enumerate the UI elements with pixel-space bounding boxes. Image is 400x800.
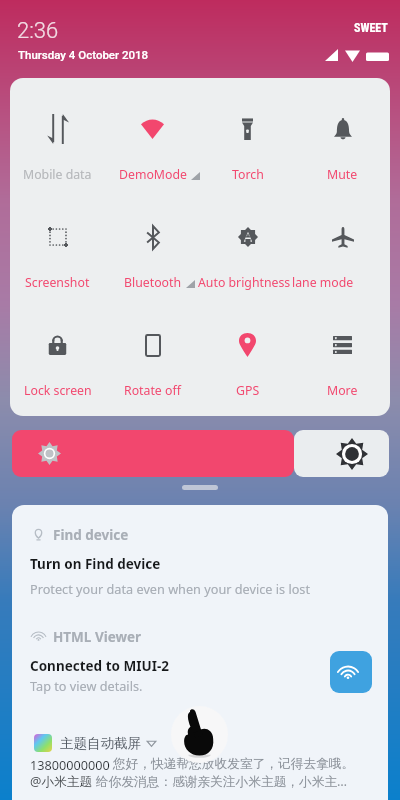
button[interactable]: Wi-Fi (330, 651, 372, 693)
staticText: More (327, 382, 358, 399)
button[interactable]: Mute (295, 78, 390, 186)
staticText: Protect your data even when your device … (30, 580, 310, 597)
button[interactable]: GPS (200, 294, 295, 402)
staticText: Thursday 4 October 2018 (18, 48, 149, 61)
staticText: @小米主题 (30, 772, 93, 789)
button[interactable]: More (295, 294, 390, 402)
staticText: Mute (327, 166, 358, 183)
button[interactable]: Lock screen (10, 294, 105, 402)
staticText: lane mode (292, 274, 354, 291)
staticText: Torch (232, 166, 264, 183)
staticText: 主题自动截屏 (60, 735, 141, 752)
staticText: Screenshot (25, 274, 90, 291)
staticText: Turn on Find device (30, 555, 161, 573)
button[interactable]: Screenshot (10, 186, 105, 294)
button[interactable]: Auto brightness (294, 430, 389, 477)
staticText: Find device (53, 526, 129, 544)
staticText: 2:36 (17, 18, 59, 44)
staticText: 您好，快递帮您放收发室了，记得去拿哦。 (113, 756, 355, 772)
staticText: Tap to view details. (30, 677, 143, 694)
button[interactable]: Find device (12, 505, 388, 607)
button[interactable]: DemoMode (105, 78, 200, 186)
staticText: Lock screen (24, 382, 92, 399)
button[interactable]: Rotate off (105, 294, 200, 402)
button[interactable]: Auto brightness (200, 186, 295, 294)
staticText: SWEET (354, 21, 388, 35)
button[interactable]: Bluetooth (105, 186, 200, 294)
button[interactable]: 主题自动截屏 (12, 712, 388, 800)
staticText: Connected to MIUI-2 (30, 657, 169, 675)
staticText: 给你发消息：感谢亲关注小米主题，小米主… (96, 772, 348, 789)
button[interactable]: Brightness slider (12, 430, 294, 477)
staticText: Rotate off (124, 382, 181, 399)
staticText: Auto brightness (198, 274, 291, 291)
staticText: HTML Viewer (53, 628, 142, 646)
staticText: 13800000000 (30, 756, 110, 773)
button[interactable]: lane mode (295, 186, 390, 294)
staticText: DemoMode (119, 166, 187, 183)
button[interactable]: Mobile data (10, 78, 105, 186)
button[interactable]: HTML Viewer (12, 607, 388, 712)
button[interactable]: Torch (200, 78, 295, 186)
staticText: Bluetooth (124, 274, 182, 291)
staticText: Mobile data (23, 166, 92, 183)
staticText: GPS (236, 382, 260, 399)
